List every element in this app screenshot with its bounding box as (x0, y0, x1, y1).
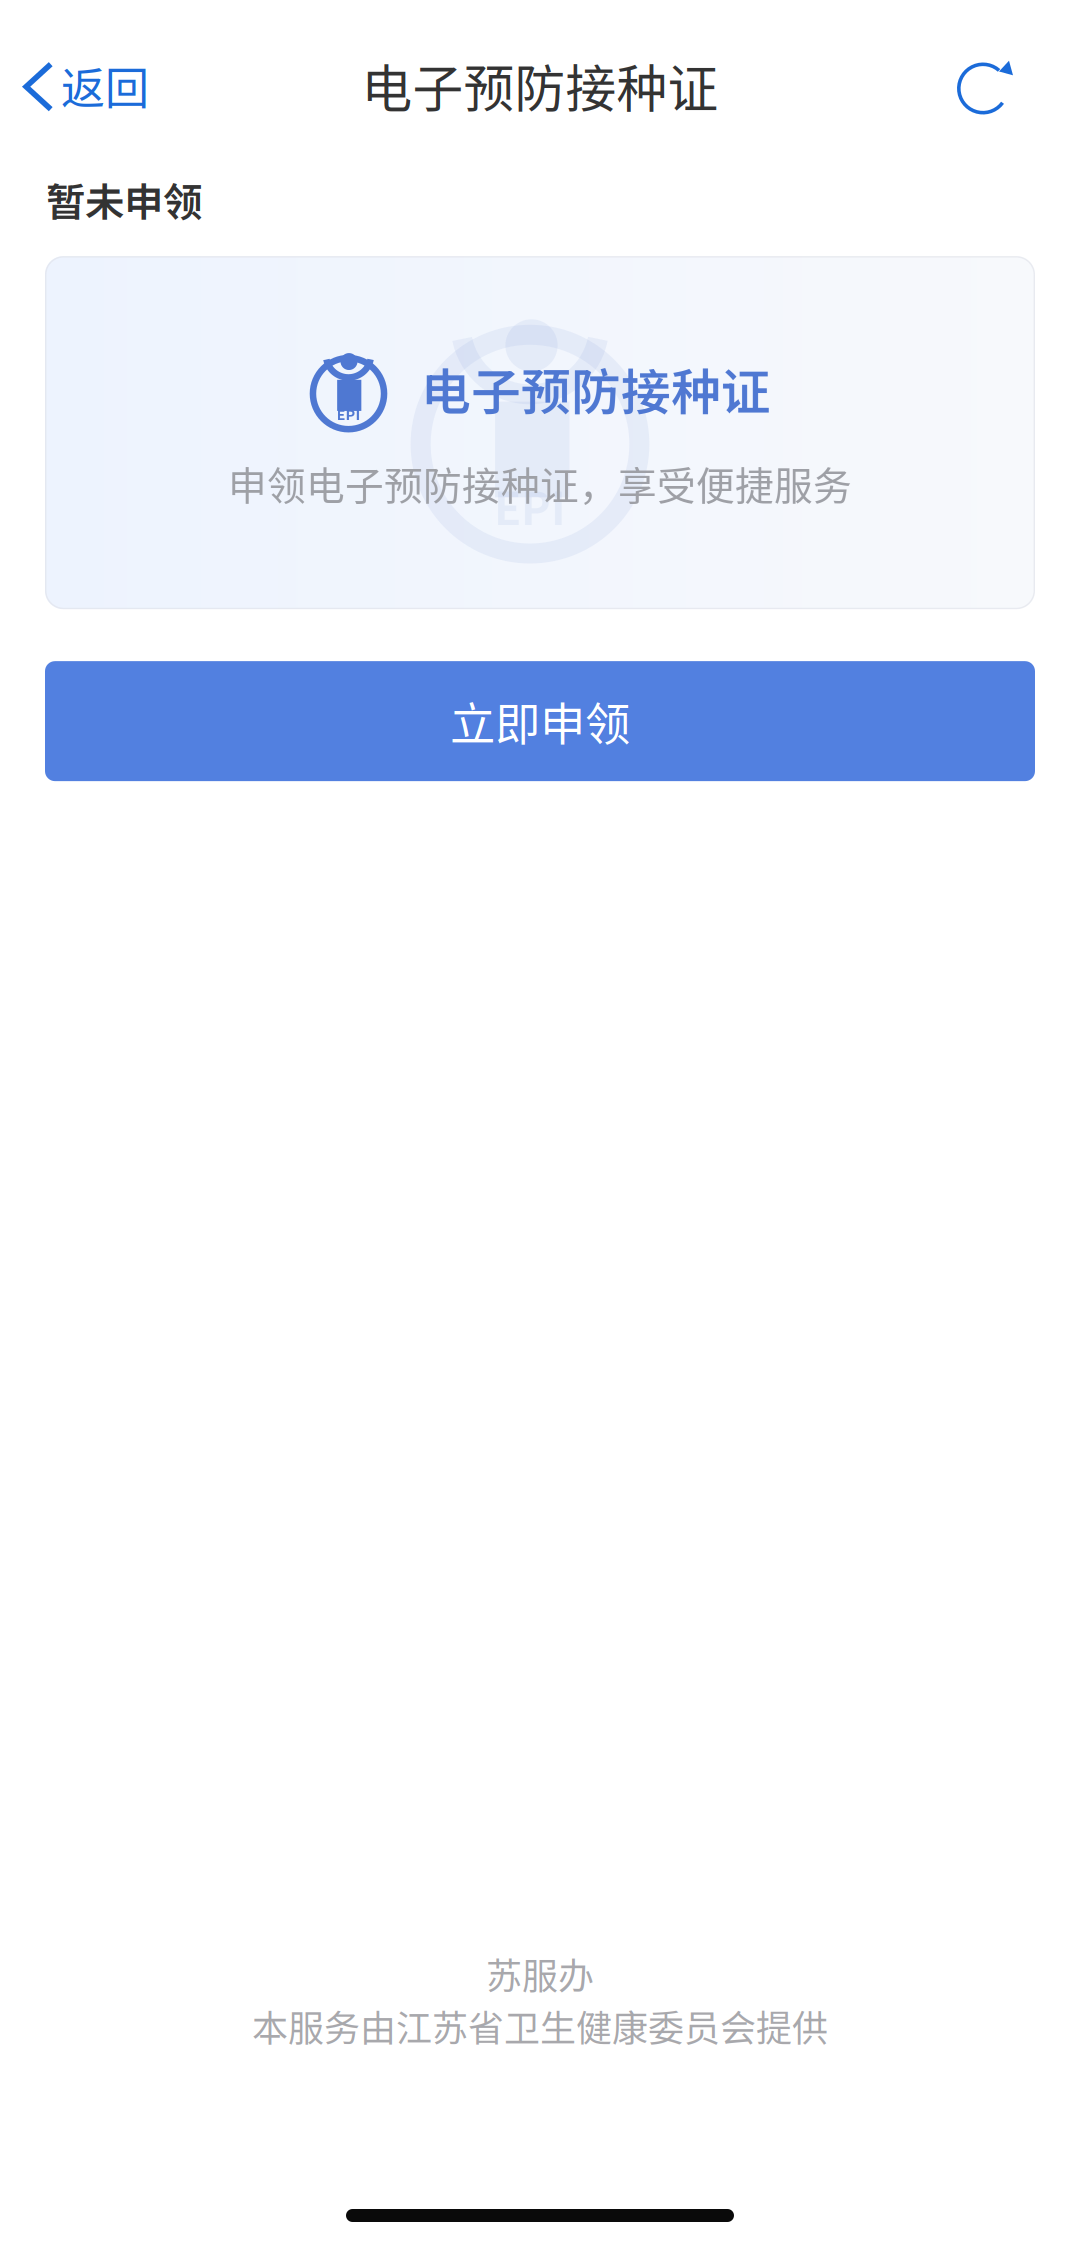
staticText: EPI (494, 474, 566, 538)
staticText: 本服务由江苏省卫生健康委员会提供 (252, 2000, 828, 2052)
button[interactable]: 返回 (0, 30, 169, 140)
staticText: 电子预防接种证 (361, 49, 718, 122)
staticText: 立即申领 (450, 688, 630, 754)
staticText: 申领电子预防接种证，享受便捷服务 (228, 455, 852, 511)
staticText: 返回 (61, 54, 149, 117)
staticText: 苏服办 (486, 1948, 594, 2000)
button[interactable]: 立即申领 (45, 661, 1035, 781)
staticText: 电子预防接种证 (421, 353, 771, 424)
button[interactable]: Refresh (932, 30, 1080, 140)
staticText: 暂未申领 (46, 171, 202, 228)
staticText: EPI (336, 403, 360, 424)
